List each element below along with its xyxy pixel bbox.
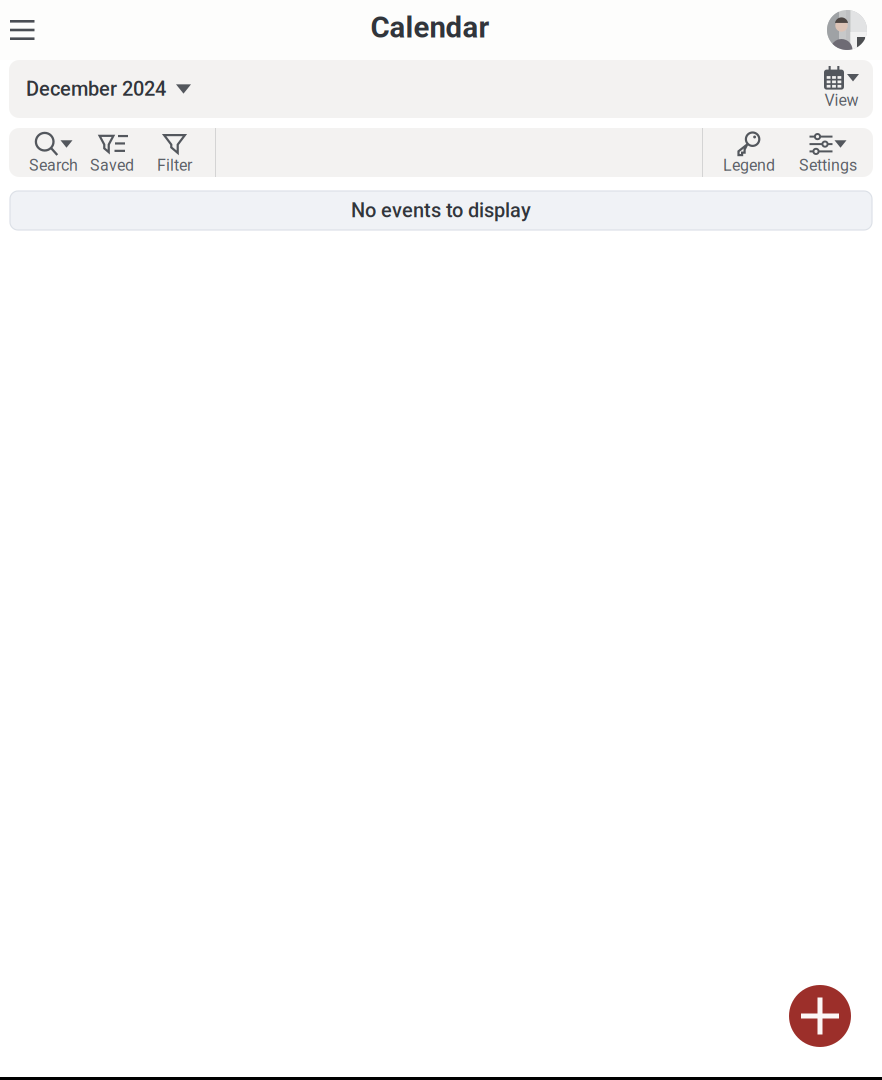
staticText: View bbox=[824, 91, 858, 110]
button[interactable]: Filter bbox=[143, 128, 215, 177]
button[interactable]: Profile bbox=[827, 10, 882, 50]
staticText: Legend bbox=[723, 156, 775, 175]
staticText: No events to display bbox=[351, 199, 531, 222]
staticText: Search bbox=[29, 156, 78, 175]
button[interactable]: Add event bbox=[789, 985, 851, 1047]
button[interactable]: Saved bbox=[84, 128, 143, 177]
staticText: Settings bbox=[799, 156, 857, 175]
staticText: Filter bbox=[157, 156, 192, 175]
staticText: Saved bbox=[90, 156, 134, 175]
button[interactable]: Menu bbox=[0, 0, 58, 60]
button[interactable]: View bbox=[824, 60, 873, 118]
button[interactable]: Settings bbox=[787, 128, 863, 177]
staticText: Calendar bbox=[370, 10, 489, 45]
button[interactable]: Search bbox=[19, 128, 84, 177]
staticText: December 2024 bbox=[26, 77, 166, 101]
button[interactable]: December 2024 bbox=[9, 60, 191, 118]
button[interactable]: Legend bbox=[703, 128, 787, 177]
